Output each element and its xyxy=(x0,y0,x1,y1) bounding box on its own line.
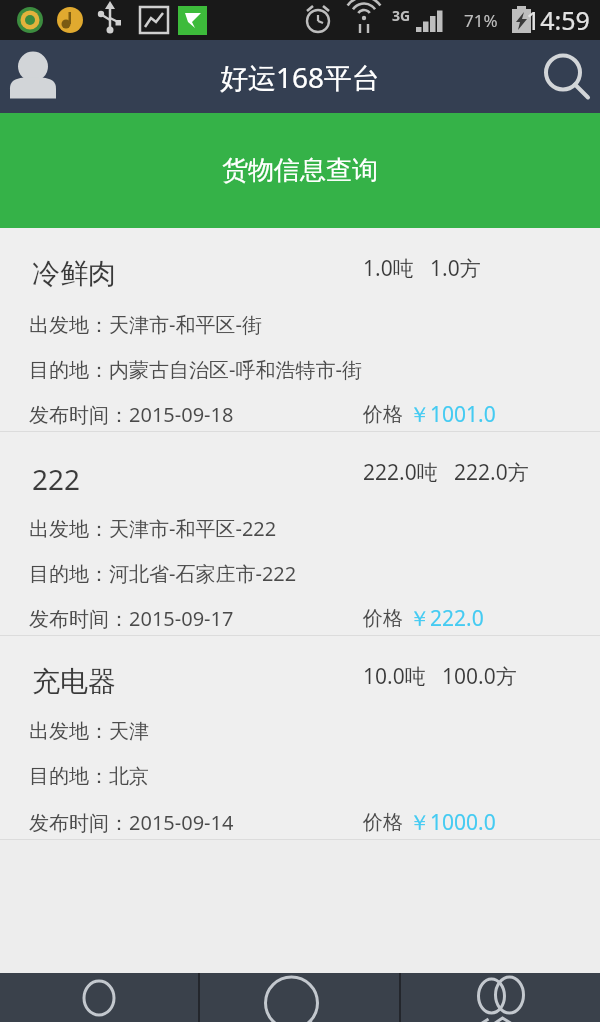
button[interactable]: 冷鲜肉 xyxy=(0,228,600,431)
button[interactable]: Contacts xyxy=(401,973,600,1022)
staticText: 222 xyxy=(32,460,81,498)
staticText: ￥222.0 xyxy=(409,604,484,633)
staticText: 出发地：天津市-和平区-222 xyxy=(29,515,277,542)
button[interactable]: 充电器 xyxy=(0,636,600,839)
staticText: 出发地：天津市-和平区-街 xyxy=(29,311,262,338)
staticText: 目的地：北京 xyxy=(29,764,149,789)
staticText: 发布时间：2015-09-18 xyxy=(29,401,234,428)
staticText: 发布时间：2015-09-14 xyxy=(29,809,234,836)
button[interactable]: Search xyxy=(532,40,600,113)
staticText: 价格 xyxy=(363,604,409,631)
staticText: 充电器 xyxy=(32,664,116,699)
staticText: 价格 xyxy=(363,400,409,427)
staticText: 冷鲜肉 xyxy=(32,256,116,291)
staticText: 目的地：内蒙古自治区-呼和浩特市-街 xyxy=(29,356,362,383)
staticText: 货物信息查询 xyxy=(222,154,378,187)
button[interactable]: Profile xyxy=(0,40,66,113)
button[interactable]: 货物信息查询 xyxy=(0,113,600,228)
button[interactable]: Home xyxy=(0,973,198,1022)
button[interactable]: Search xyxy=(200,973,399,1022)
staticText: ￥1000.0 xyxy=(409,808,496,837)
staticText: ￥1001.0 xyxy=(409,400,496,429)
staticText: 发布时间：2015-09-17 xyxy=(29,605,234,632)
staticText: 1.0吨 1.0方 xyxy=(363,254,481,283)
button[interactable]: 222 xyxy=(0,432,600,635)
staticText: 222.0吨 222.0方 xyxy=(363,458,529,487)
staticText: 14:59 xyxy=(526,3,590,37)
staticText: 好运168平台 xyxy=(220,58,381,96)
staticText: 出发地：天津 xyxy=(29,719,149,744)
staticText: 目的地：河北省-石家庄市-222 xyxy=(29,560,297,587)
staticText: 71% xyxy=(464,9,498,32)
staticText: 10.0吨 100.0方 xyxy=(363,662,517,691)
staticText: 3G xyxy=(392,6,411,25)
staticText: 价格 xyxy=(363,808,409,835)
